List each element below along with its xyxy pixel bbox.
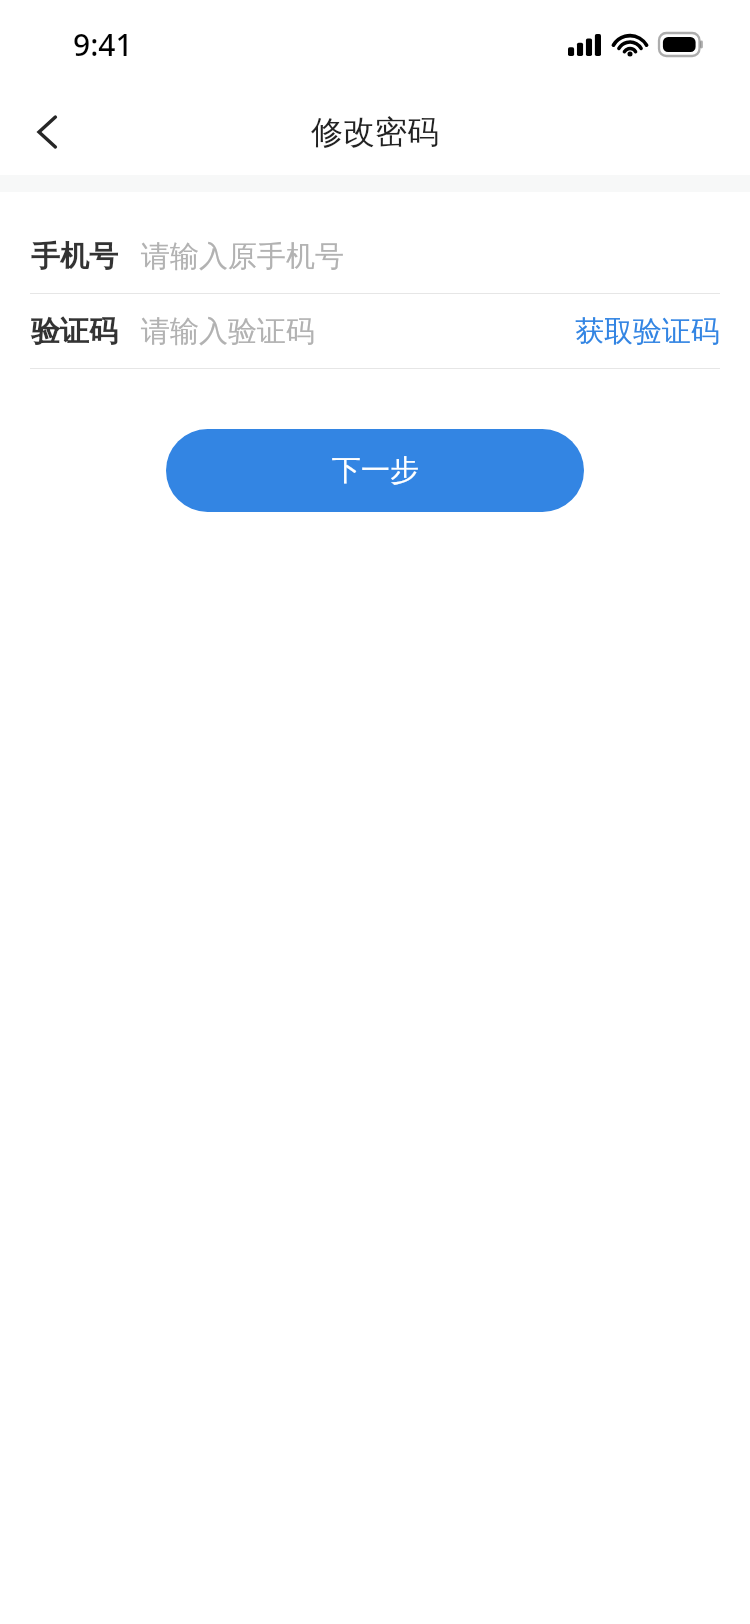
staticText: 下一步 bbox=[332, 452, 419, 489]
staticText: 9:41 bbox=[73, 24, 133, 65]
staticText: 请输入原手机号 bbox=[141, 238, 344, 275]
button[interactable]: 获取验证码 bbox=[567, 313, 720, 350]
button[interactable]: 下一步 bbox=[166, 429, 584, 512]
button[interactable]: 验证码 bbox=[0, 294, 750, 368]
button[interactable]: Back bbox=[14, 99, 80, 165]
staticText: 手机号 bbox=[31, 238, 118, 275]
staticText: 获取验证码 bbox=[575, 313, 720, 350]
staticText: 修改密码 bbox=[311, 112, 439, 152]
staticText: 验证码 bbox=[31, 313, 118, 350]
button[interactable]: 手机号 bbox=[0, 219, 750, 293]
staticText: 请输入验证码 bbox=[141, 313, 315, 350]
